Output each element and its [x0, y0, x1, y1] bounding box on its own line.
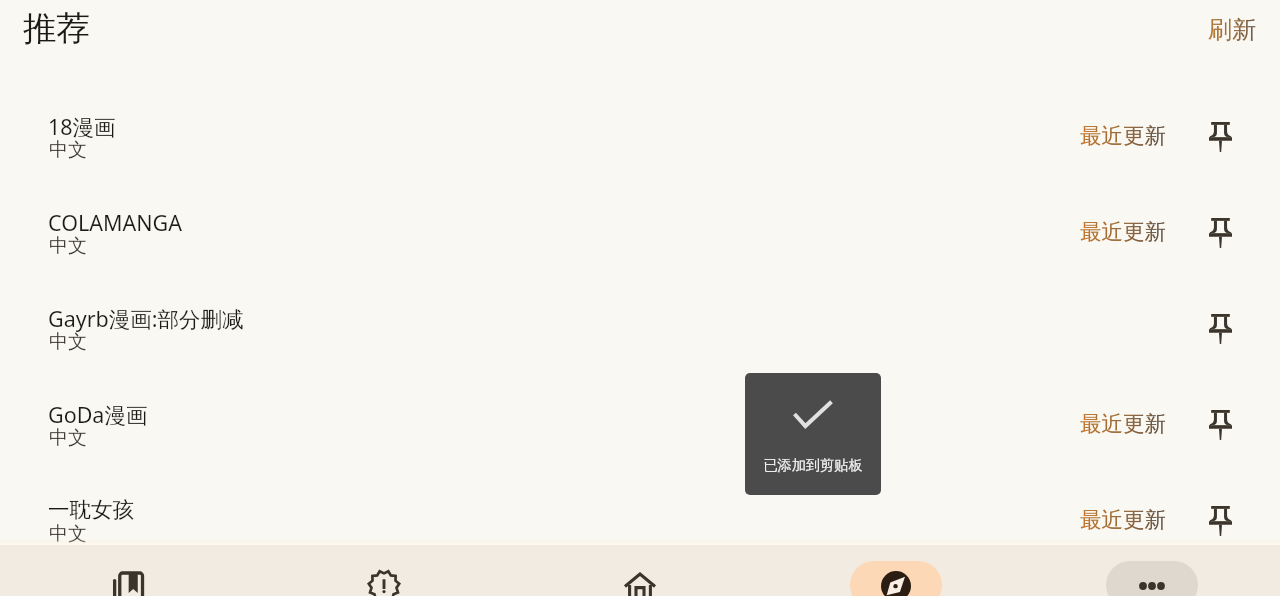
- staticText: COLAMANGA: [48, 208, 182, 237]
- staticText: 18漫画: [48, 112, 116, 141]
- button[interactable]: GoDa漫画: [0, 369, 1280, 465]
- button[interactable]: Pin: [1198, 499, 1242, 543]
- button[interactable]: Library: [0, 545, 256, 596]
- button[interactable]: Explore: [768, 545, 1024, 596]
- staticText: 中文: [49, 522, 87, 546]
- button[interactable]: Gayrb漫画:部分删减: [0, 273, 1280, 369]
- button[interactable]: More: [1024, 545, 1280, 596]
- button[interactable]: Home: [512, 545, 768, 596]
- button[interactable]: Pin: [1198, 403, 1242, 447]
- button[interactable]: Pin: [1198, 307, 1242, 351]
- staticText: 已添加到剪贴板: [745, 456, 881, 474]
- button[interactable]: 一耽女孩: [0, 465, 1280, 561]
- staticText: 刷新: [1208, 15, 1256, 45]
- staticText: GoDa漫画: [48, 400, 148, 429]
- staticText: 中文: [49, 138, 87, 162]
- staticText: Gayrb漫画:部分删减: [48, 304, 244, 333]
- staticText: 一耽女孩: [48, 496, 134, 523]
- staticText: 中文: [49, 330, 87, 354]
- button[interactable]: COLAMANGA: [0, 177, 1280, 273]
- staticText: 最近更新: [1080, 218, 1166, 245]
- button[interactable]: Pin: [1198, 115, 1242, 159]
- staticText: 最近更新: [1080, 410, 1166, 437]
- staticText: 中文: [49, 426, 87, 450]
- button[interactable]: 推荐: [11, 0, 102, 58]
- staticText: 中文: [49, 234, 87, 258]
- staticText: 推荐: [23, 8, 90, 50]
- button[interactable]: Updates: [256, 545, 512, 596]
- staticText: 最近更新: [1080, 506, 1166, 533]
- button[interactable]: 刷新: [1196, 12, 1268, 48]
- button[interactable]: Pin: [1198, 211, 1242, 255]
- staticText: 最近更新: [1080, 122, 1166, 149]
- button[interactable]: 18漫画: [0, 81, 1280, 177]
